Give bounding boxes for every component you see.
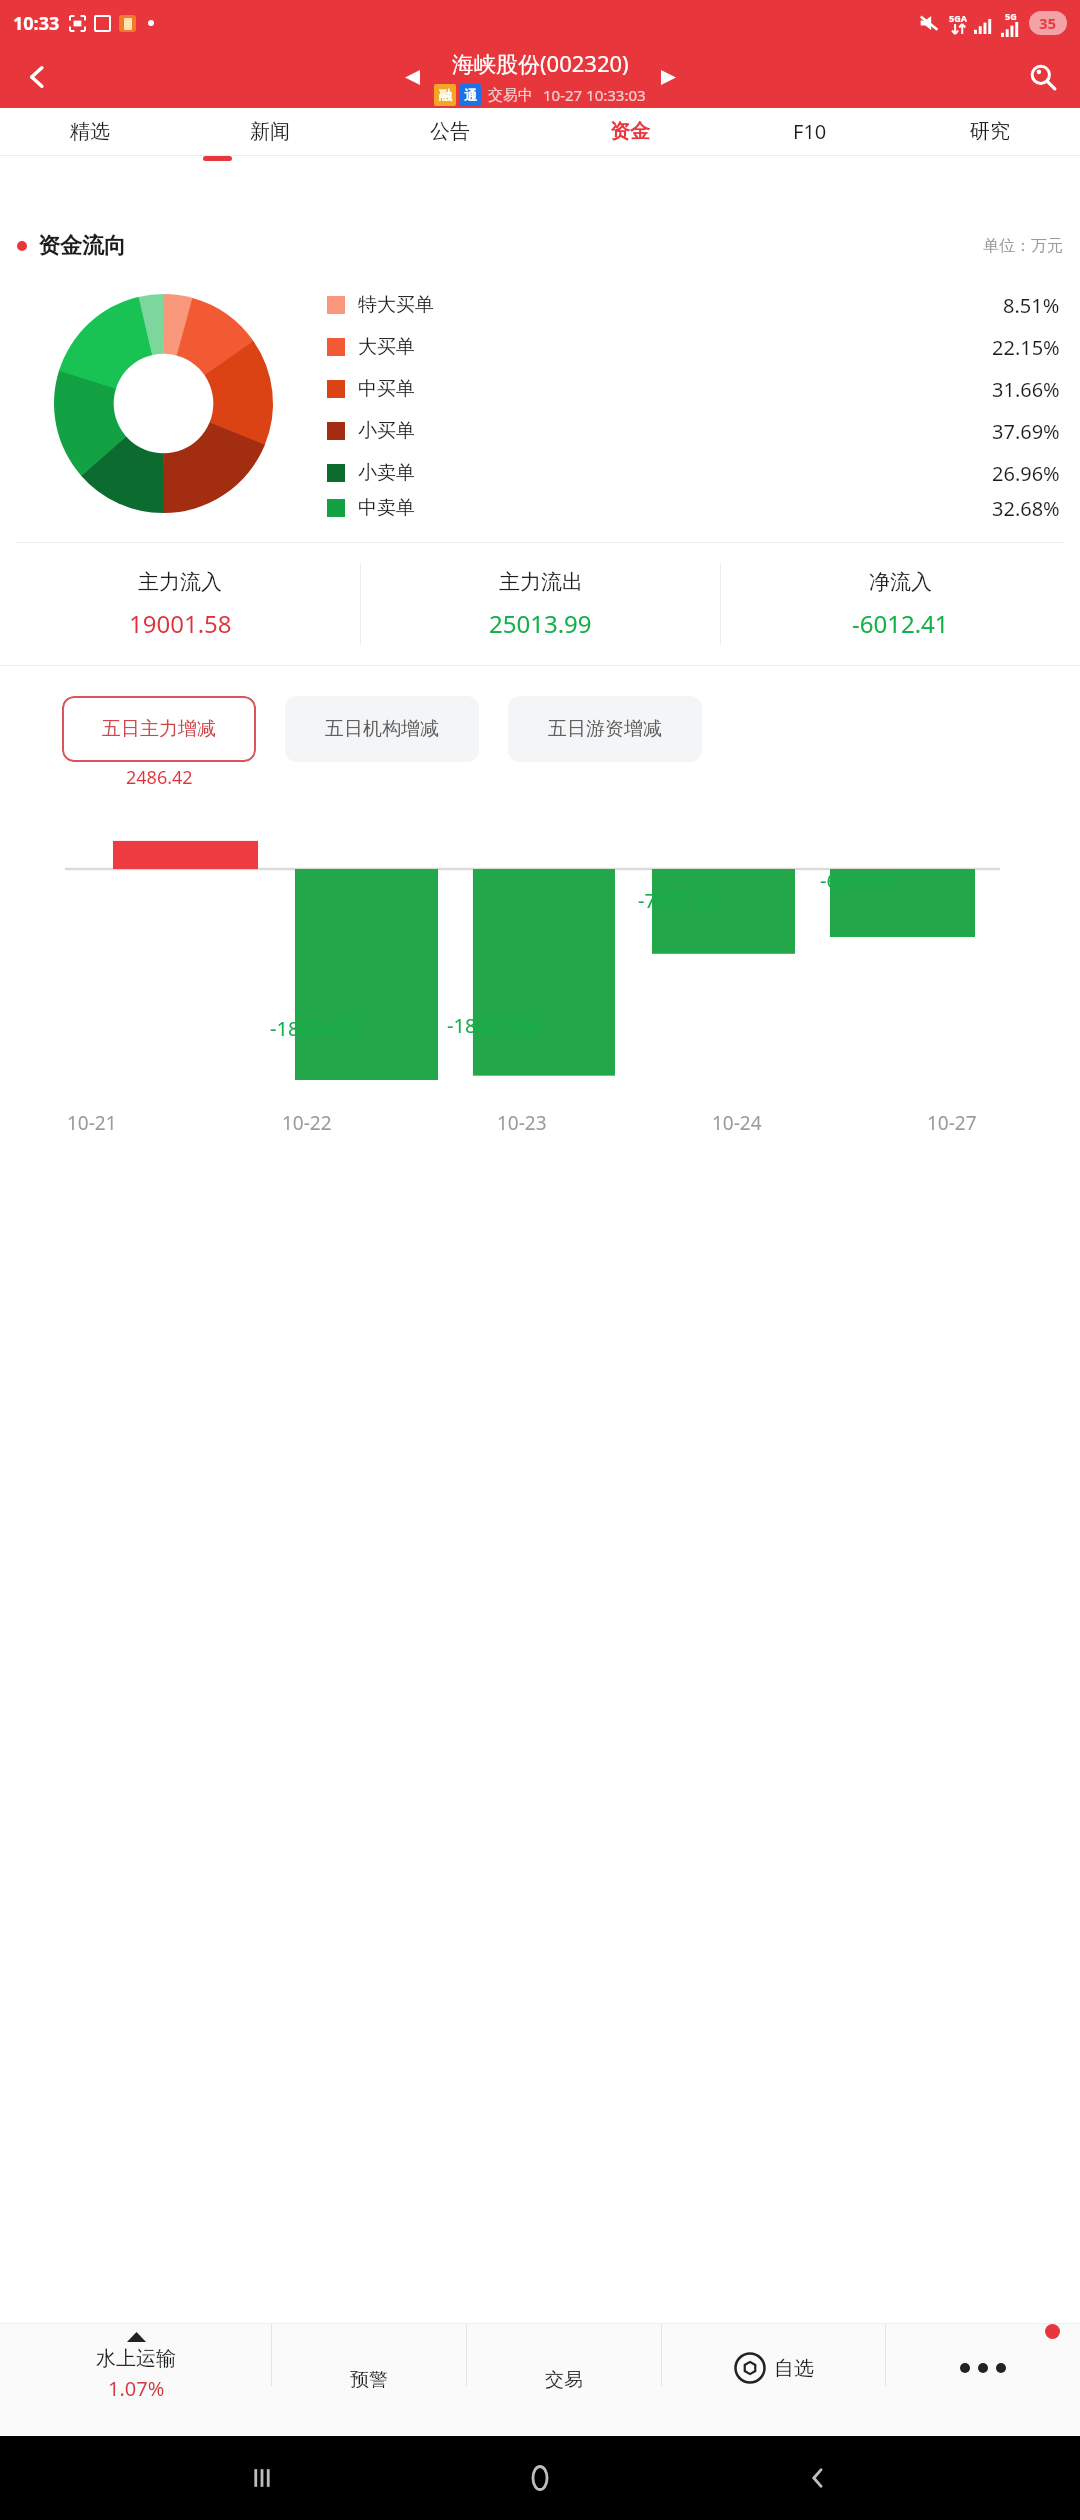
staticText: 小卖单 — [358, 461, 415, 485]
staticText: 净流入 — [869, 569, 932, 595]
button[interactable]: 预警 — [272, 2324, 466, 2436]
staticText: 中买单 — [358, 377, 415, 401]
staticText: 19001.58 — [129, 607, 232, 640]
staticText: 资金 — [610, 119, 650, 144]
button[interactable]: Search — [1018, 52, 1068, 102]
staticText: 5G — [1005, 10, 1017, 22]
button[interactable]: 水上运输 — [0, 2324, 271, 2436]
staticText: 小买单 — [358, 419, 415, 443]
staticText: 五日主力增减 — [102, 717, 216, 741]
staticText: 2486.42 — [126, 765, 193, 790]
staticText: 8.51% — [1003, 292, 1060, 319]
staticText: 精选 — [70, 119, 110, 144]
staticText: 五日机构增减 — [325, 717, 439, 741]
staticText: 新闻 — [250, 119, 290, 144]
staticText: 主力流入 — [138, 569, 222, 595]
staticText: -6012.41 — [852, 607, 949, 640]
button[interactable]: 五日主力增减 — [62, 696, 256, 762]
other: Recents — [249, 2465, 275, 2491]
button[interactable]: 精选 — [0, 108, 180, 155]
staticText: 10-23 — [497, 1110, 547, 1136]
staticText: 32.68% — [992, 495, 1060, 522]
staticText: 特大买单 — [358, 293, 434, 317]
staticText: 5GA — [949, 12, 967, 24]
staticText: -7497.43 — [638, 887, 719, 914]
staticText: -18271.86 — [447, 1012, 539, 1039]
button[interactable]: Previous stock — [390, 55, 434, 99]
button[interactable]: 净流入 — [721, 543, 1080, 665]
staticText: 10:33 — [13, 11, 60, 36]
staticText: 研究 — [970, 119, 1010, 144]
staticText: 海峡股份(002320) — [452, 48, 629, 78]
button[interactable]: Back — [12, 52, 62, 102]
staticText: 自选 — [774, 2356, 814, 2381]
button[interactable]: 交易 — [467, 2324, 661, 2436]
button[interactable]: 公告 — [360, 108, 540, 155]
button[interactable]: 资金 — [540, 108, 720, 155]
other: Home — [524, 2462, 556, 2494]
staticText: 交易 — [545, 2368, 583, 2392]
other: Back — [805, 2465, 831, 2491]
staticText: 融 — [439, 87, 452, 103]
staticText: -18654.52 — [270, 1015, 362, 1042]
staticText: 公告 — [430, 119, 470, 144]
button[interactable]: More options — [886, 2324, 1080, 2436]
staticText: 10-27 — [927, 1110, 977, 1136]
staticText: 通 — [464, 87, 477, 103]
staticText: 35 — [1039, 13, 1057, 33]
staticText: 中卖单 — [358, 496, 415, 520]
staticText: F10 — [793, 118, 827, 145]
staticText: 26.96% — [992, 460, 1060, 487]
button[interactable]: 主力流出 — [361, 543, 720, 665]
staticText: 水上运输 — [96, 2346, 176, 2371]
button[interactable]: 新闻 — [180, 108, 360, 155]
staticText: 10-24 — [712, 1110, 762, 1136]
button[interactable]: 自选 — [662, 2324, 885, 2436]
staticText: 25013.99 — [489, 607, 592, 640]
button[interactable]: 研究 — [900, 108, 1080, 155]
button[interactable]: Next stock — [646, 55, 690, 99]
staticText: -6012.41 — [820, 867, 901, 894]
button[interactable]: 五日游资增减 — [508, 696, 702, 762]
staticText: 大买单 — [358, 335, 415, 359]
staticText: 主力流出 — [499, 569, 583, 595]
staticText: 预警 — [350, 2368, 388, 2392]
staticText: 31.66% — [992, 376, 1060, 403]
button[interactable]: F10 — [720, 108, 900, 155]
staticText: 五日游资增减 — [548, 717, 662, 741]
staticText: 10-27 10:33:03 — [543, 85, 646, 105]
staticText: 22.15% — [992, 334, 1060, 361]
staticText: 资金流向 — [38, 232, 126, 260]
staticText: 37.69% — [992, 418, 1060, 445]
staticText: 10-21 — [67, 1110, 117, 1136]
staticText: 1.07% — [108, 2375, 165, 2402]
button[interactable]: 五日机构增减 — [285, 696, 479, 762]
staticText: 10-22 — [282, 1110, 332, 1136]
button[interactable]: 主力流入 — [0, 543, 360, 665]
staticText: 交易中 — [488, 86, 533, 105]
staticText: 单位：万元 — [983, 236, 1063, 256]
